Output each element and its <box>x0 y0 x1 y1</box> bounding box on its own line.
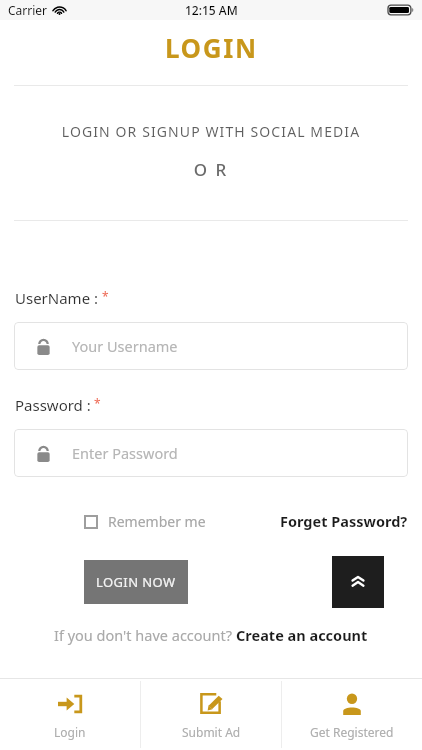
staticText: * <box>102 288 109 304</box>
staticText: Create an account <box>236 625 368 645</box>
staticText: If you don't have account? <box>54 625 236 645</box>
staticText: Submit Ad <box>182 724 241 740</box>
staticText: LOGIN OR SIGNUP WITH SOCIAL MEDIA <box>0 122 422 141</box>
button[interactable]: LOGIN NOW <box>84 560 188 604</box>
button[interactable]: Forget Password? <box>280 507 408 535</box>
staticText: 12:15 AM <box>185 2 238 18</box>
staticText: LOGIN <box>165 30 258 65</box>
staticText: Get Registered <box>310 724 394 740</box>
button[interactable]: Scroll to top <box>332 556 384 608</box>
staticText: Remember me <box>108 512 206 531</box>
button[interactable]: Login <box>0 679 140 750</box>
staticText: LOGIN NOW <box>96 573 176 591</box>
staticText: Your Username <box>72 336 178 356</box>
button[interactable]: Remember me <box>84 508 206 535</box>
staticText: Forget Password? <box>280 511 408 531</box>
staticText: Carrier <box>8 2 48 18</box>
staticText: Login <box>54 724 86 740</box>
button[interactable]: If you don't have account? <box>0 625 422 645</box>
staticText: * <box>94 395 101 411</box>
button[interactable]: Get Registered <box>282 679 422 750</box>
staticText: Password : <box>15 395 91 415</box>
staticText: UserName : <box>15 288 99 308</box>
staticText: Enter Password <box>72 443 178 463</box>
button[interactable]: Your Username <box>14 322 408 370</box>
button[interactable]: Enter Password <box>14 429 408 477</box>
button[interactable]: Submit Ad <box>141 679 281 750</box>
staticText: O R <box>0 158 422 181</box>
